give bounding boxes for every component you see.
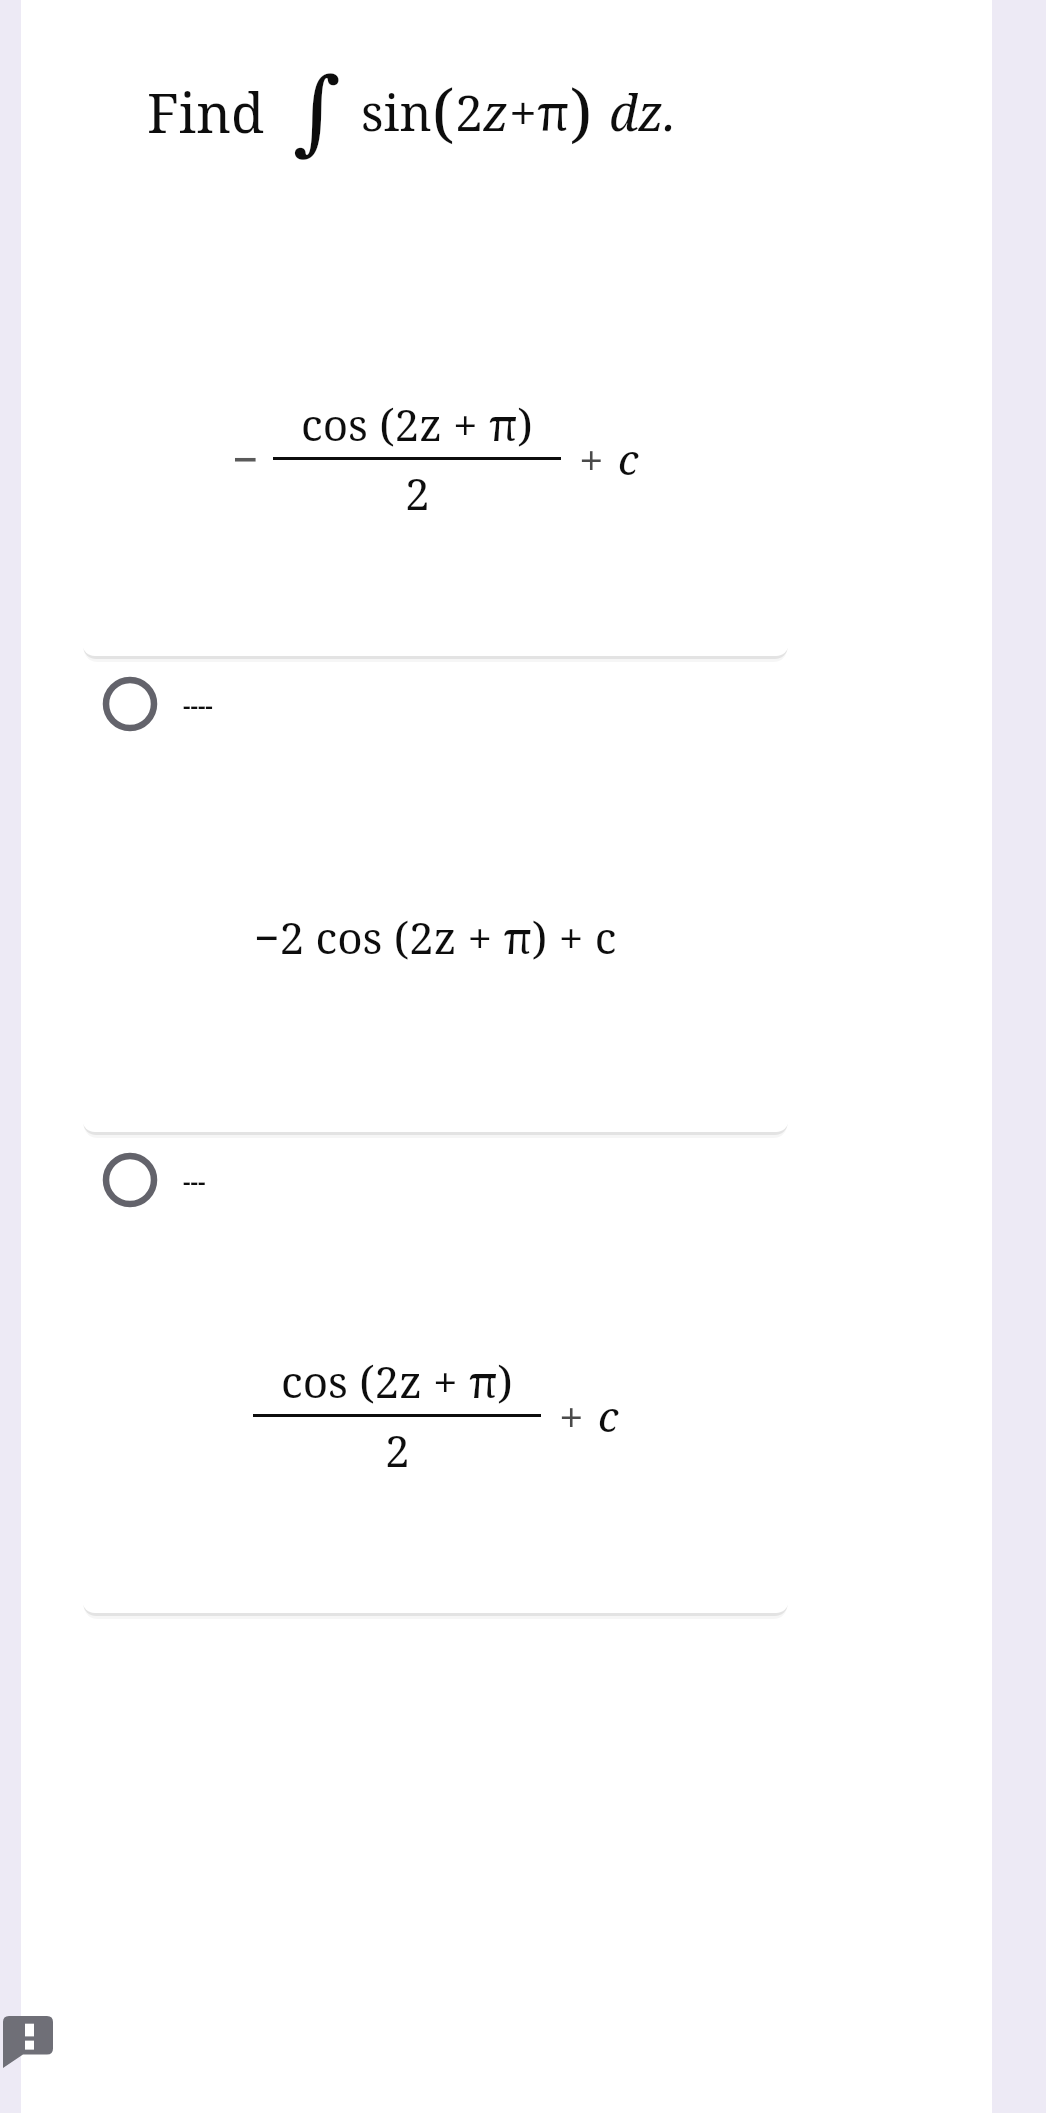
staticText: −2 cos (2z + π) + c: [254, 907, 617, 967]
staticText: 2: [385, 1420, 410, 1480]
staticText: 2: [405, 463, 430, 523]
button[interactable]: cos (2z + π): [82, 1218, 789, 1613]
staticText: cos (2z + π): [301, 394, 533, 454]
staticText: ---: [183, 1164, 206, 1197]
staticText: ): [570, 68, 593, 155]
staticText: −: [232, 427, 259, 490]
staticText: c: [618, 430, 639, 487]
staticText: cos (2z + π): [281, 1351, 513, 1411]
staticText: +: [509, 78, 537, 146]
other: Select answer: [103, 1153, 157, 1207]
other: Select answer: [103, 677, 157, 731]
button[interactable]: Select answer: [82, 666, 789, 742]
button[interactable]: −2 cos (2z + π) + c: [82, 742, 789, 1132]
button[interactable]: Select answer: [82, 1142, 789, 1218]
staticText: +: [579, 429, 604, 489]
staticText: Find: [147, 75, 265, 149]
staticText: dz.: [609, 78, 676, 146]
staticText: z: [483, 78, 509, 146]
button[interactable]: Report a problem: [3, 2016, 53, 2068]
staticText: 2: [455, 78, 483, 146]
staticText: c: [598, 1387, 619, 1444]
staticText: ∫: [293, 58, 341, 165]
staticText: (: [432, 68, 455, 155]
staticText: π: [537, 78, 570, 146]
staticText: sin: [361, 78, 432, 146]
staticText: ----: [183, 688, 213, 721]
button[interactable]: −: [82, 261, 789, 656]
staticText: +: [559, 1386, 584, 1446]
